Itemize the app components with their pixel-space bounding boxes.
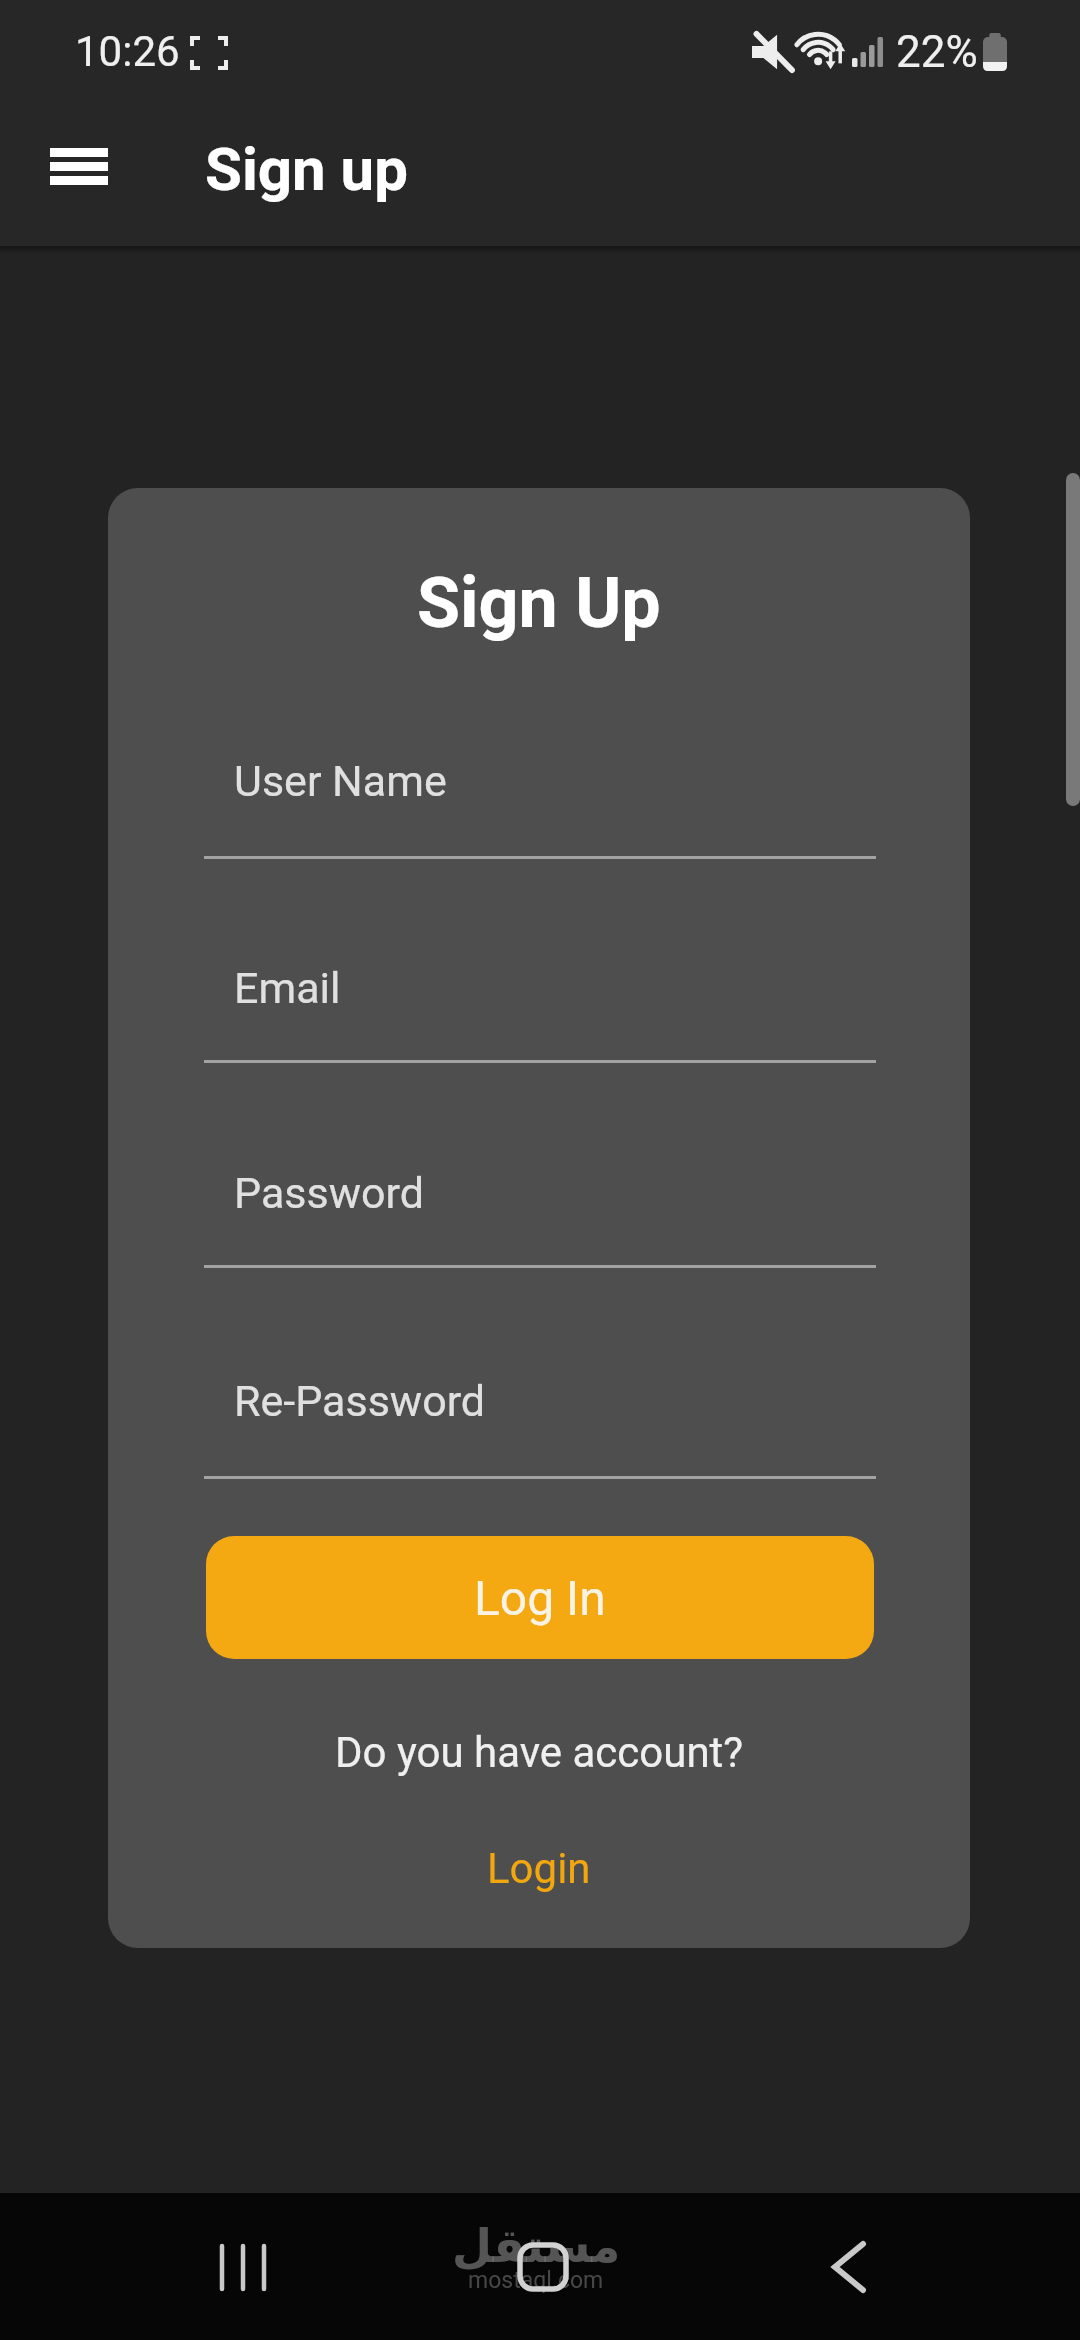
staticText: mostaql.com xyxy=(468,2267,604,2294)
button[interactable]: Email xyxy=(204,923,876,1063)
staticText: 10:26 xyxy=(75,27,180,76)
button[interactable]: Re-Password xyxy=(204,1336,876,1479)
button[interactable] xyxy=(784,2217,914,2317)
staticText: Email xyxy=(234,963,341,1013)
staticText: User Name xyxy=(234,756,447,806)
staticText: Login xyxy=(487,1844,591,1893)
staticText: مستقل xyxy=(452,2219,621,2273)
button[interactable] xyxy=(178,2217,308,2317)
staticText: Do you have account? xyxy=(335,1728,744,1777)
staticText: Log In xyxy=(474,1570,606,1626)
button[interactable]: User Name xyxy=(204,716,876,859)
button[interactable] xyxy=(28,124,130,208)
button[interactable]: Password xyxy=(204,1128,876,1268)
button[interactable]: Login xyxy=(487,1844,591,1893)
staticText: 22% xyxy=(896,26,978,78)
button[interactable]: Log In xyxy=(206,1536,874,1659)
staticText: Re-Password xyxy=(234,1376,486,1426)
staticText: Sign Up xyxy=(417,562,661,644)
staticText: Sign up xyxy=(205,134,408,204)
button[interactable] xyxy=(478,2217,608,2317)
staticText: Password xyxy=(234,1168,424,1218)
